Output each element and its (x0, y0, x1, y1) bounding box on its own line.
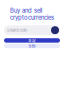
staticText: Buy (28, 38, 35, 43)
staticText: Buy and sell cryptocurrencies (10, 7, 54, 21)
button[interactable]: Buy (4, 38, 60, 43)
staticText: Sell (28, 43, 35, 48)
button[interactable]: Sell (4, 44, 60, 48)
staticText: Search coin (7, 28, 27, 33)
